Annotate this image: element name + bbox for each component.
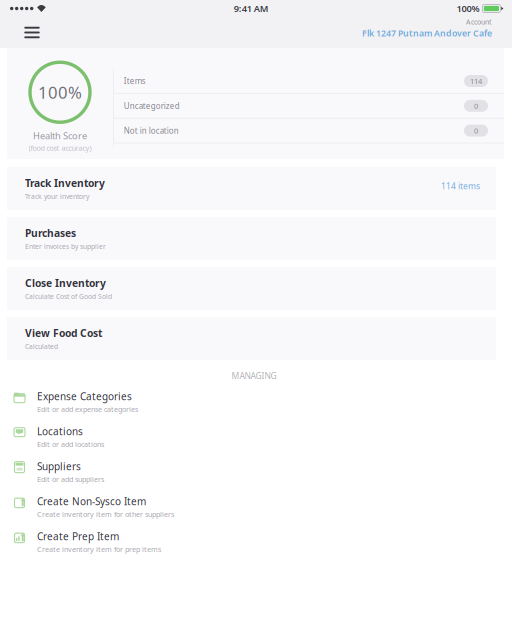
button[interactable]: Menu [17, 21, 47, 43]
staticText: Edit or add suppliers [37, 474, 104, 484]
button[interactable]: Track Inventory [7, 167, 496, 210]
staticText: Purchases [25, 226, 76, 240]
staticText: MANAGING [231, 370, 276, 382]
staticText: Create Non-Sysco Item [37, 495, 146, 508]
staticText: Calculate Cost of Good Sold [25, 292, 112, 301]
staticText: Suppliers [37, 460, 81, 473]
staticText: Edit or add expense categories [37, 404, 138, 414]
staticText: Not in location [124, 125, 179, 136]
button[interactable]: Expense Categories [7, 384, 512, 419]
button[interactable]: Locations [7, 419, 512, 454]
staticText: Track your inventory [25, 192, 89, 201]
staticText: Flk 1247 Putnam Andover Cafe [362, 27, 492, 39]
staticText: Create Prep Item [37, 530, 119, 543]
staticText: Items [124, 76, 146, 86]
staticText: Edit or add locations [37, 439, 104, 449]
staticText: Enter invoices by supplier [25, 242, 106, 251]
staticText: Uncategorized [124, 100, 180, 111]
staticText: 100% [38, 81, 82, 104]
staticText: Health Score [33, 129, 87, 142]
staticText: 100% [456, 2, 479, 15]
staticText: Locations [37, 425, 83, 438]
staticText: Create inventory item for prep items [37, 544, 161, 554]
staticText: Close Inventory [25, 276, 106, 290]
staticText: View Food Cost [25, 326, 102, 340]
staticText: 114 [470, 76, 482, 86]
staticText: Create inventory item for other supplier… [37, 509, 174, 519]
staticText: Expense Categories [37, 390, 132, 403]
button[interactable]: Purchases [7, 217, 496, 260]
button[interactable]: Account [362, 17, 512, 48]
staticText: 0 [474, 125, 478, 136]
staticText: Track Inventory [25, 176, 105, 190]
staticText: (food cost accuracy) [28, 143, 91, 153]
button[interactable]: Create Non-Sysco Item [7, 489, 512, 524]
staticText: Account [466, 17, 492, 26]
staticText: 9:41 AM [234, 2, 269, 15]
staticText: 114 items [441, 180, 480, 192]
staticText: 0 [474, 101, 478, 111]
staticText: Calculated [25, 342, 58, 351]
button[interactable]: Close Inventory [7, 267, 496, 310]
button[interactable]: Suppliers [7, 454, 512, 489]
button[interactable]: View Food Cost [7, 317, 496, 360]
button[interactable]: Create Prep Item [7, 524, 512, 559]
